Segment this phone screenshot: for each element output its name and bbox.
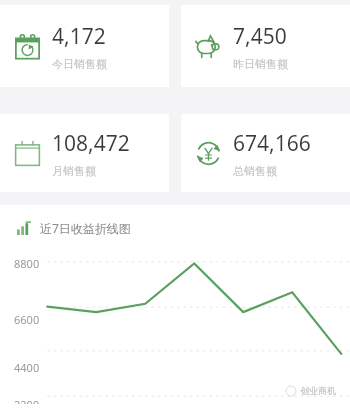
staticText: 2200 xyxy=(14,397,40,404)
staticText: 近7日收益折线图 xyxy=(40,220,131,236)
button[interactable]: 近7日收益折线图 xyxy=(0,205,350,410)
other: 昨日销售额 xyxy=(195,33,222,60)
other: 总销售额 xyxy=(195,140,222,167)
staticText: 总销售额 xyxy=(233,164,277,178)
other: 今日销售额 xyxy=(14,33,41,60)
staticText: 8800 xyxy=(14,256,40,271)
button[interactable]: 月销售额 xyxy=(0,114,169,192)
button[interactable]: 今日销售额 xyxy=(0,5,169,87)
button[interactable]: 总销售额 xyxy=(181,114,350,192)
other: 月销售额 xyxy=(14,140,41,167)
staticText: 今日销售额 xyxy=(52,57,107,71)
staticText: 674,166 xyxy=(233,129,311,158)
staticText: 6600 xyxy=(14,312,40,327)
staticText: 4400 xyxy=(14,360,40,375)
staticText: 108,472 xyxy=(52,129,130,158)
staticText: 月销售额 xyxy=(52,164,96,178)
staticText: 昨日销售额 xyxy=(233,57,288,71)
button[interactable]: 昨日销售额 xyxy=(181,5,350,87)
staticText: 4,172 xyxy=(52,22,106,51)
staticText: 创业商机 xyxy=(300,385,336,396)
staticText: 7,450 xyxy=(233,22,287,51)
